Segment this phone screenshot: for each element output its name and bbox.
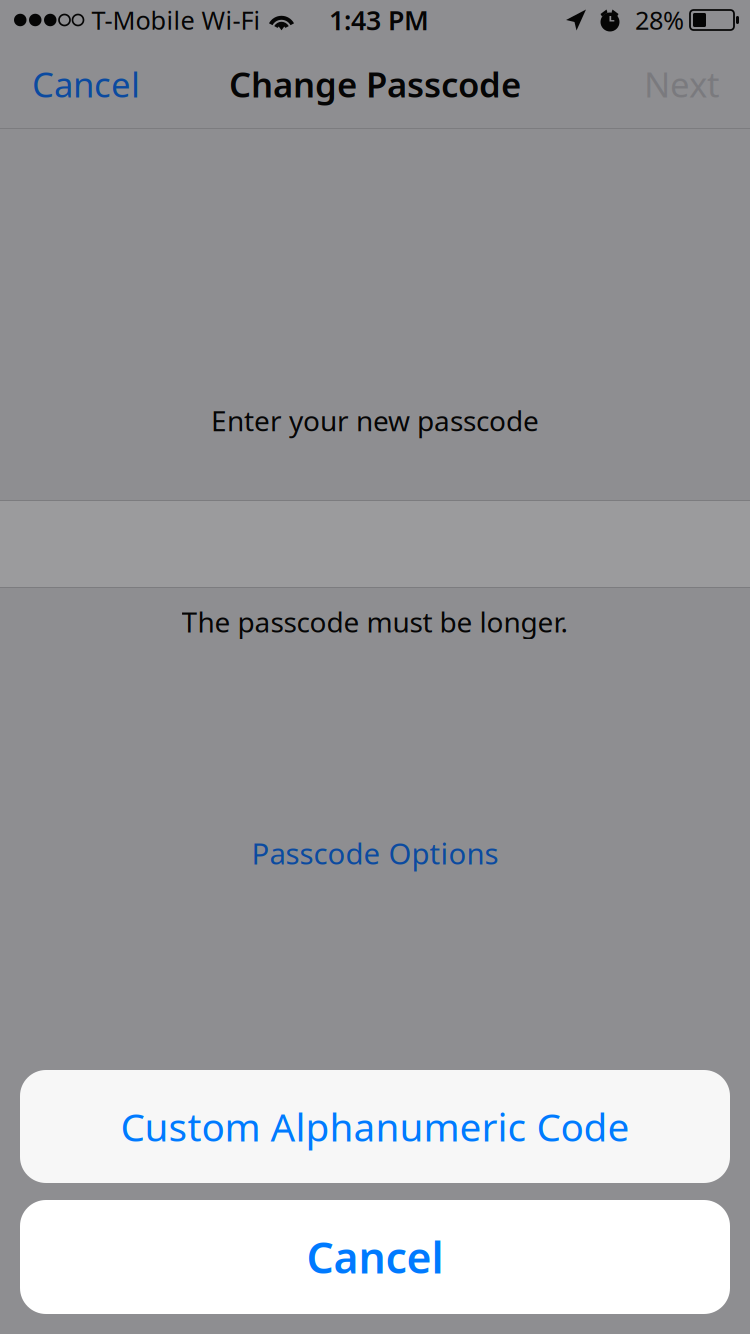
staticText: Custom Alphanumeric Code [120, 1101, 629, 1152]
button[interactable]: Next, dimmed [628, 40, 750, 128]
staticText: 28% [635, 3, 684, 37]
staticText: The passcode must be longer. [181, 603, 568, 640]
button[interactable]: Cancel [0, 40, 156, 128]
staticText: Enter your new passcode [211, 402, 539, 439]
button[interactable]: Cancel [20, 1200, 730, 1314]
staticText: Next [644, 61, 720, 107]
staticText: Cancel [32, 61, 140, 107]
staticText: Cancel [306, 1229, 443, 1285]
staticText: T-Mobile Wi-Fi [91, 3, 260, 37]
button[interactable]: Passcode Options [0, 826, 750, 880]
staticText: Passcode Options [251, 833, 498, 872]
staticText: Change Passcode [229, 61, 521, 107]
button[interactable]: Custom Alphanumeric Code [20, 1070, 730, 1183]
staticText: 1:43 PM [329, 2, 429, 38]
